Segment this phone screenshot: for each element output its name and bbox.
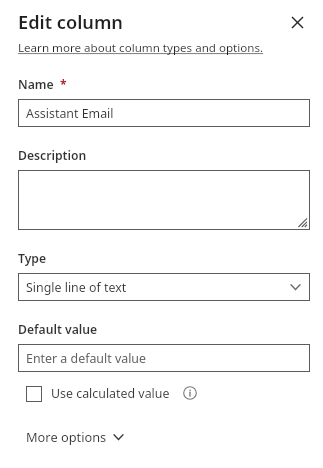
staticText: Enter a default value bbox=[26, 350, 146, 367]
staticText: Type bbox=[18, 250, 47, 267]
button[interactable]: Type bbox=[18, 273, 310, 301]
staticText: Edit column bbox=[18, 10, 123, 35]
staticText: Use calculated value bbox=[51, 385, 170, 402]
button[interactable]: Close bbox=[284, 9, 310, 35]
staticText: Name * bbox=[18, 76, 67, 93]
button[interactable]: Assistant Email bbox=[18, 99, 310, 127]
staticText: Default value bbox=[18, 321, 98, 338]
staticText: Assistant Email bbox=[26, 105, 114, 122]
button[interactable]: Enter a default value bbox=[18, 344, 310, 372]
button[interactable]: Use calculated value bbox=[26, 385, 170, 402]
staticText: Learn more about column types and option… bbox=[18, 40, 264, 56]
button[interactable]: More information bbox=[181, 384, 199, 402]
button[interactable]: Learn more about column types and option… bbox=[18, 40, 264, 56]
staticText: Single line of text bbox=[26, 279, 127, 296]
staticText: Description bbox=[18, 147, 87, 164]
button[interactable]: Description bbox=[18, 170, 310, 230]
button[interactable]: More options bbox=[26, 428, 123, 445]
staticText: More options bbox=[26, 428, 107, 445]
